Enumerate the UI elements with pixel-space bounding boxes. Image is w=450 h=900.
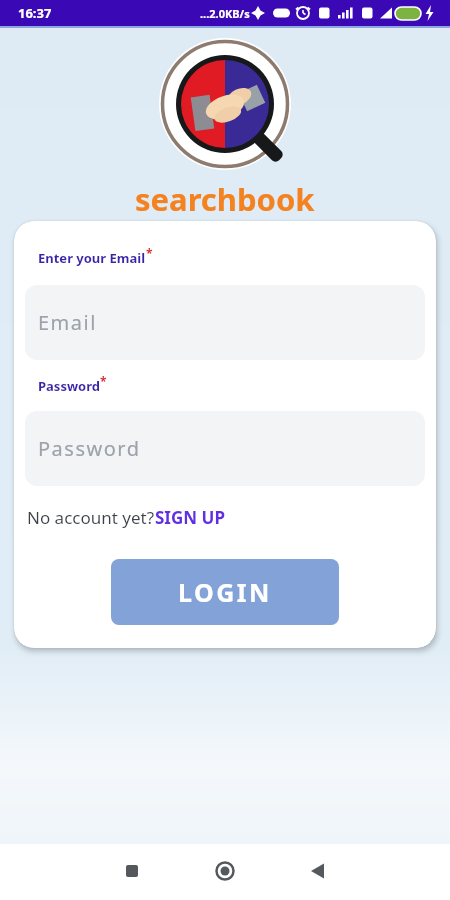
button[interactable] [179,844,272,900]
staticText: * [100,373,107,389]
button[interactable]: Email [25,285,425,360]
staticText: Enter your Email [38,249,146,267]
staticText: * [146,245,153,261]
staticText: No account yet? [27,506,155,529]
staticText: Password [38,435,141,462]
staticText: 16:37 [18,4,52,22]
button[interactable]: LOGIN [111,559,339,625]
staticText: LOGIN [178,575,272,609]
staticText: ...2.0KB/s [200,6,250,21]
button[interactable] [272,844,365,900]
button[interactable]: Password [25,411,425,486]
staticText: Email [38,309,97,336]
staticText: searchbook [135,178,315,220]
staticText: Password [38,377,100,395]
button[interactable] [86,844,179,900]
button[interactable]: SIGN UP [155,506,225,529]
